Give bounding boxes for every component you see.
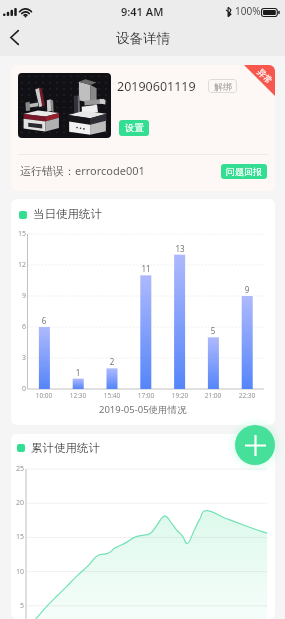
staticText: 5: [203, 325, 223, 336]
staticText: 3: [17, 353, 26, 363]
staticText: 25: [15, 464, 24, 474]
staticText: 异常: [255, 67, 274, 86]
button[interactable]: Back: [0, 23, 28, 51]
button[interactable]: 设置: [119, 120, 149, 136]
staticText: 19:20: [168, 391, 192, 400]
staticText: 设置: [125, 122, 144, 134]
staticText: 10: [15, 567, 24, 577]
staticText: 0: [17, 384, 26, 394]
staticText: 运行错误：errorcode001: [20, 163, 145, 178]
staticText: 15:40: [100, 391, 124, 400]
staticText: 15: [15, 532, 24, 542]
staticText: 2: [102, 356, 122, 367]
staticText: 解绑: [214, 81, 232, 92]
staticText: 20: [15, 498, 24, 508]
staticText: 6: [17, 322, 26, 332]
staticText: 2019-05-05使用情况: [99, 403, 187, 416]
staticText: 15: [17, 229, 26, 239]
staticText: 12:30: [66, 391, 90, 400]
staticText: 1: [68, 367, 88, 378]
staticText: 13: [170, 243, 190, 254]
staticText: 累计使用统计: [31, 441, 100, 455]
button[interactable]: 问题回报: [221, 164, 267, 179]
staticText: 5: [15, 601, 24, 611]
staticText: 10:00: [32, 391, 56, 400]
staticText: 21:00: [201, 391, 225, 400]
staticText: 9:41 AM: [121, 4, 164, 18]
button[interactable]: Add: [235, 425, 275, 465]
staticText: 100%: [235, 4, 261, 18]
staticText: 17:00: [134, 391, 158, 400]
staticText: 11: [136, 263, 156, 274]
staticText: 9: [237, 284, 257, 295]
staticText: 6: [34, 315, 54, 326]
staticText: 20190601119: [117, 78, 196, 94]
staticText: 22:30: [235, 391, 259, 400]
staticText: 当日使用统计: [33, 207, 102, 221]
button[interactable]: 解绑: [208, 79, 237, 93]
staticText: 设备详情: [116, 30, 170, 46]
staticText: 12: [17, 260, 26, 270]
staticText: 问题回报: [226, 166, 262, 177]
staticText: 9: [17, 291, 26, 301]
